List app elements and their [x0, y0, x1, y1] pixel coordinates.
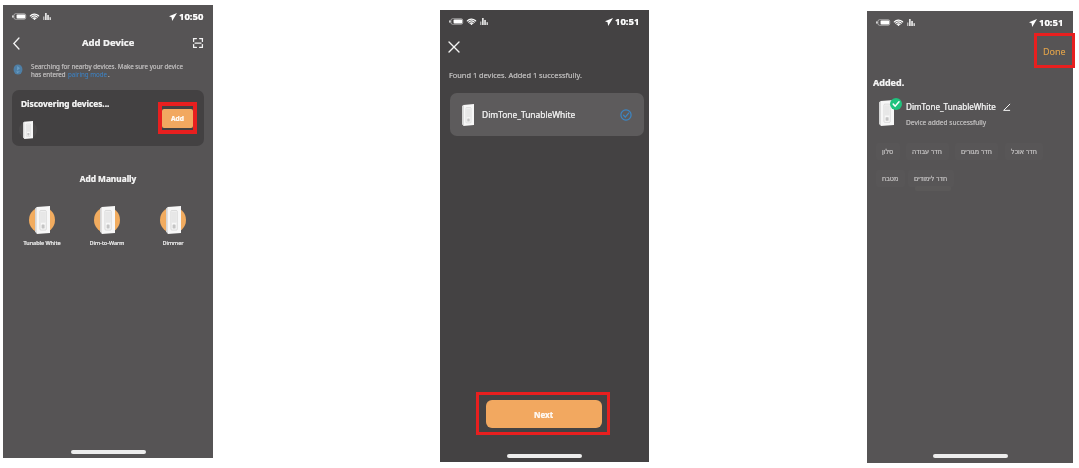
staticText: Found 1 devices. Added 1 successfully.: [449, 70, 582, 80]
button[interactable]: חדר עבודה: [906, 143, 949, 160]
button[interactable]: Dimmer: [147, 202, 199, 246]
staticText: חדר אוכל: [1011, 147, 1037, 156]
staticText: 10:50: [179, 10, 204, 23]
staticText: pairing mode: [68, 70, 108, 78]
staticText: 10:51: [615, 15, 640, 28]
staticText: Done: [1043, 45, 1066, 57]
staticText: Add: [171, 114, 184, 123]
staticText: סלון: [882, 148, 894, 155]
staticText: Tunable White: [16, 239, 68, 246]
button[interactable]: Close: [444, 37, 464, 57]
button[interactable]: Done: [1037, 36, 1072, 65]
staticText: חדר לימודים: [914, 174, 948, 183]
staticText: Discovering devices...: [21, 98, 110, 109]
staticText: Added.: [873, 76, 905, 88]
button[interactable]: Edit name: [1001, 102, 1011, 112]
staticText: 10:51: [1039, 16, 1064, 29]
staticText: Dimmer: [147, 239, 199, 246]
staticText: Dim-to-Warm: [81, 239, 133, 246]
button[interactable]: מטבח: [876, 170, 905, 187]
button[interactable]: חדר מגורים: [955, 143, 998, 160]
button[interactable]: חדר לימודים: [908, 170, 954, 187]
staticText: Add Manually: [3, 173, 213, 184]
button[interactable]: Add: [162, 109, 193, 128]
staticText: has entered: [31, 70, 68, 78]
button[interactable]: Tunable White: [16, 202, 68, 246]
staticText: Device added successfully: [906, 118, 987, 127]
button[interactable]: Next: [486, 400, 602, 428]
button[interactable]: DimTone_TunableWhite: [450, 93, 644, 136]
button[interactable]: חדר אוכל: [1005, 143, 1043, 160]
button[interactable]: סלון: [876, 143, 900, 160]
staticText: מטבח: [882, 175, 899, 182]
staticText: DimTone_TunableWhite: [906, 101, 996, 112]
staticText: Next: [534, 409, 554, 420]
staticText: Add Device: [82, 36, 135, 49]
staticText: .: [108, 70, 110, 78]
button[interactable]: Scan QR code: [190, 35, 206, 51]
staticText: חדר עבודה: [912, 147, 943, 156]
staticText: Searching for nearby devices. Make sure …: [31, 62, 183, 70]
staticText: DimTone_TunableWhite: [482, 109, 576, 120]
button[interactable]: Dim-to-Warm: [81, 202, 133, 246]
button[interactable]: Back: [7, 34, 25, 52]
staticText: חדר מגורים: [961, 147, 992, 156]
